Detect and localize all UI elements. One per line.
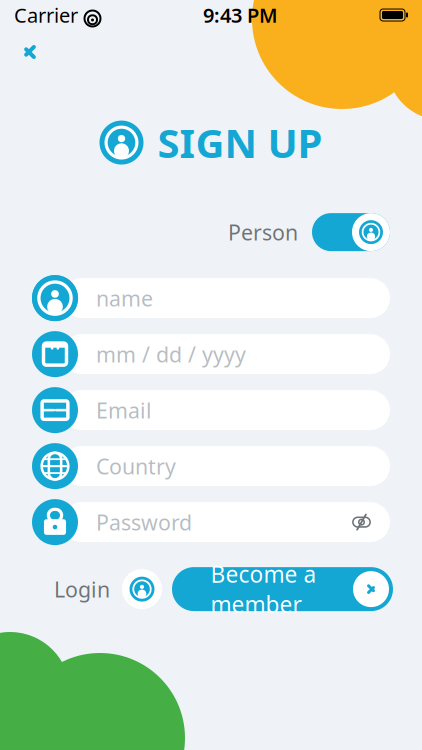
staticText: SIGN UP xyxy=(157,116,322,169)
button[interactable]: Login xyxy=(122,569,162,609)
staticText: name xyxy=(96,284,153,312)
button[interactable]: Back xyxy=(8,30,52,74)
button[interactable]: Email xyxy=(0,387,422,433)
staticText: Become a member xyxy=(210,559,316,619)
staticText: 9:43 PM xyxy=(203,2,278,28)
staticText: Carrier xyxy=(14,2,78,28)
staticText: mm / dd / yyyy xyxy=(96,340,246,368)
staticText: Person xyxy=(228,218,298,246)
button[interactable]: mm / dd / yyyy xyxy=(0,331,422,377)
staticText: Country xyxy=(96,452,176,480)
staticText: Password xyxy=(96,508,192,536)
button[interactable]: name xyxy=(0,275,422,321)
staticText: Login xyxy=(54,575,110,603)
staticText: Email xyxy=(96,396,152,424)
button[interactable]: Person toggle xyxy=(312,213,390,251)
button[interactable]: Become a member xyxy=(172,567,393,611)
button[interactable]: Country xyxy=(0,443,422,489)
button[interactable]: Password xyxy=(0,499,422,545)
